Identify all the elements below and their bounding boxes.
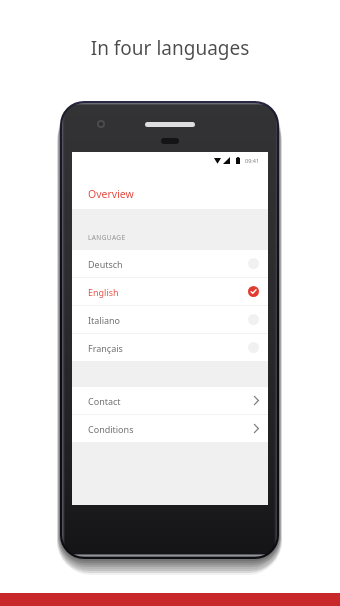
staticText: Contact	[88, 395, 121, 407]
other: Open Contact	[254, 396, 259, 405]
staticText: In four languages	[0, 35, 340, 61]
button[interactable]: Conditions	[72, 415, 268, 442]
button[interactable]: English	[72, 278, 268, 305]
staticText: 09:41	[245, 157, 260, 164]
staticText: LANGUAGE	[88, 233, 126, 242]
staticText: Conditions	[88, 423, 134, 435]
button[interactable]: Français	[72, 334, 268, 361]
staticText: English	[88, 286, 119, 298]
staticText: Deutsch	[88, 258, 123, 270]
button[interactable]: Deutsch	[72, 250, 268, 277]
other: Open Conditions	[254, 424, 259, 433]
button[interactable]: Italiano	[72, 306, 268, 333]
button[interactable]: Contact	[72, 387, 268, 414]
staticText: Français	[88, 342, 123, 354]
staticText: Overview	[88, 187, 134, 201]
staticText: Italiano	[88, 314, 121, 326]
